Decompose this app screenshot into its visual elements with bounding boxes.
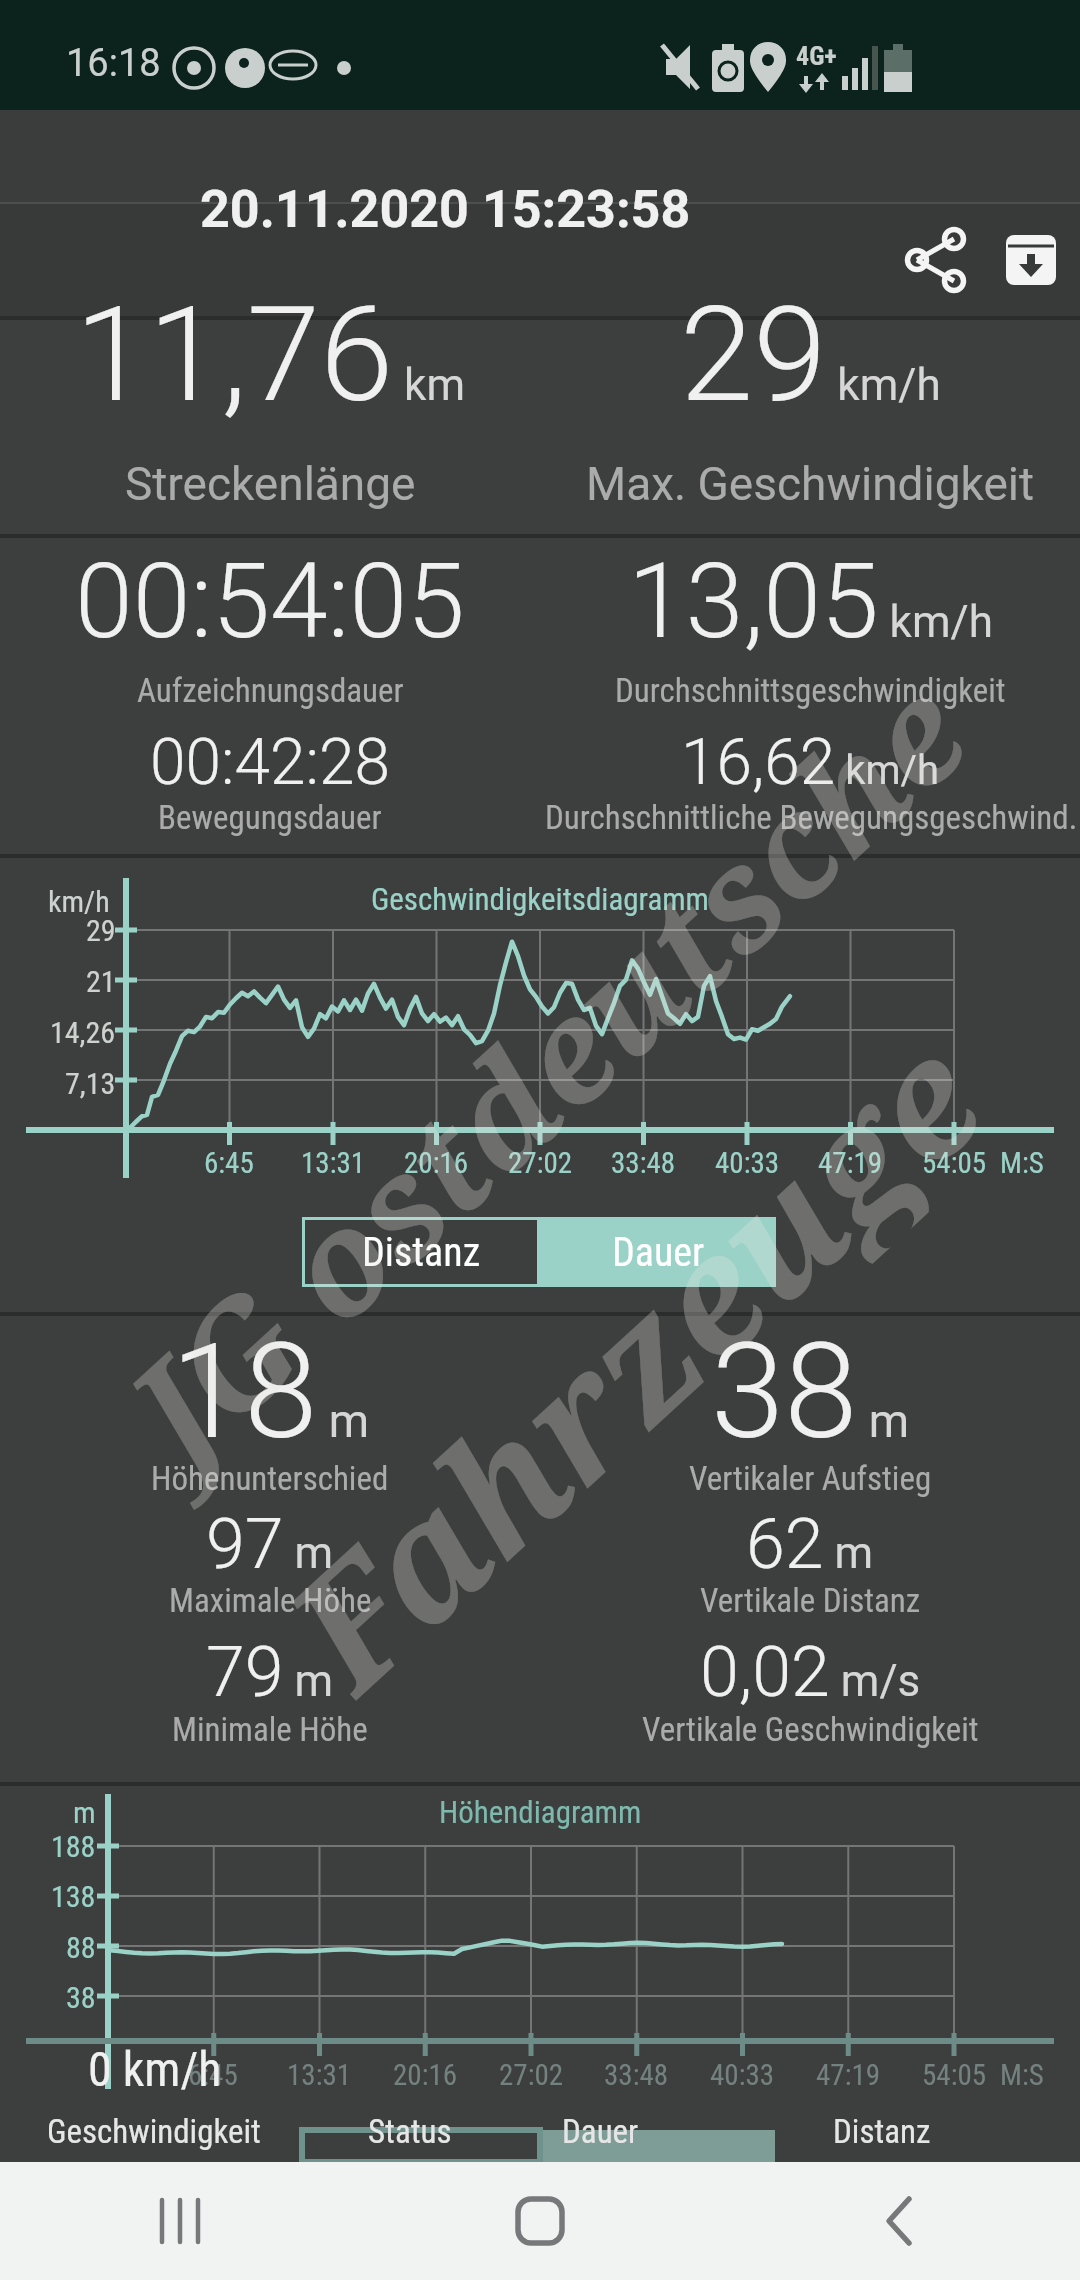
staticText: 4G+ — [796, 41, 837, 71]
staticText: 11,76 km — [75, 278, 466, 433]
staticText: m — [73, 1795, 96, 1830]
staticText: 00:42:28 — [150, 725, 390, 800]
staticText: 97 m — [206, 1503, 334, 1585]
staticText: 47:19 — [816, 2058, 881, 2092]
staticText: 40:33 — [715, 1146, 780, 1180]
staticText: Dauer — [562, 2112, 639, 2151]
staticText: JG ostdeutsche — [86, 636, 1005, 1501]
staticText: Status — [368, 2112, 452, 2151]
staticText: 29 — [86, 913, 116, 948]
staticText: Geschwindigkeit — [47, 2112, 261, 2151]
staticText: 27:02 — [508, 1146, 573, 1180]
staticText: Höhendiagramm — [439, 1794, 642, 1830]
button[interactable] — [985, 214, 1077, 306]
staticText: 40:33 — [710, 2058, 775, 2092]
staticText: Durchschnittsgeschwindigkeit — [615, 671, 1006, 710]
staticText: 54:05 — [922, 2058, 987, 2092]
staticText: Aufzeichnungsdauer — [137, 671, 404, 710]
staticText: 18 m — [171, 1315, 370, 1470]
staticText: Maximale Höhe — [169, 1581, 372, 1620]
button[interactable]: Distanz — [302, 1217, 540, 1287]
staticText: 6:45 — [188, 2058, 238, 2092]
staticText: Höhenunterschied — [151, 1459, 389, 1498]
staticText: 0 km/h — [88, 2041, 222, 2097]
staticText: Distanz — [833, 2112, 931, 2151]
staticText: 29 km/h — [680, 278, 941, 433]
button[interactable] — [360, 2162, 720, 2280]
staticText: Minimale Höhe — [172, 1710, 368, 1749]
staticText: Vertikale Geschwindigkeit — [642, 1710, 979, 1749]
staticText: 188 — [51, 1829, 96, 1864]
staticText: 38 — [66, 1980, 96, 2015]
staticText: 88 — [66, 1930, 96, 1965]
staticText: 0,02 m/s — [700, 1631, 921, 1713]
staticText: Distanz — [362, 1229, 481, 1276]
staticText: Dauer — [612, 1229, 705, 1276]
staticText: Fahrzeuge — [239, 989, 1012, 1720]
staticText: 20:16 — [404, 1146, 469, 1180]
staticText: Geschwindigkeitsdiagramm — [371, 881, 709, 917]
staticText: Bewegungsdauer — [158, 798, 382, 837]
staticText: 7,13 — [65, 1066, 116, 1101]
staticText: 13,05 km/h — [628, 541, 993, 663]
staticText: Max. Geschwindigkeit — [586, 457, 1035, 511]
staticText: 16,62 km/h — [681, 725, 940, 800]
staticText: Streckenlänge — [125, 457, 416, 511]
button[interactable] — [720, 2162, 1080, 2280]
staticText: 27:02 — [499, 2058, 564, 2092]
staticText: 33:48 — [611, 1146, 676, 1180]
staticText: 20:16 — [393, 2058, 458, 2092]
staticText: Vertikaler Aufstieg — [689, 1459, 932, 1498]
staticText: 62 m — [746, 1503, 874, 1585]
staticText: 6:45 — [204, 1146, 254, 1180]
staticText: Vertikale Distanz — [700, 1581, 921, 1620]
staticText: km/h — [48, 884, 110, 919]
staticText: 54:05 — [922, 1146, 987, 1180]
staticText: Durchschnittliche Bewegungsgeschwind… — [545, 798, 1077, 837]
staticText: M:S — [1000, 1146, 1044, 1180]
staticText: 16:18 — [66, 41, 161, 86]
staticText: 13:31 — [301, 1146, 366, 1180]
staticText: 14,26 — [50, 1015, 116, 1050]
staticText: 13:31 — [287, 2058, 352, 2092]
staticText: 20.11.2020 15:23:58 — [200, 179, 691, 240]
staticText: 00:54:05 — [75, 541, 465, 663]
button[interactable]: Dauer — [540, 1217, 776, 1287]
staticText: 21 — [86, 964, 116, 999]
button[interactable] — [0, 2162, 360, 2280]
button[interactable] — [890, 214, 982, 306]
staticText: 47:19 — [818, 1146, 883, 1180]
staticText: 138 — [51, 1879, 96, 1914]
staticText: 33:48 — [604, 2058, 669, 2092]
staticText: M:S — [1000, 2058, 1044, 2092]
staticText: 38 m — [711, 1315, 910, 1470]
staticText: 79 m — [206, 1631, 334, 1713]
